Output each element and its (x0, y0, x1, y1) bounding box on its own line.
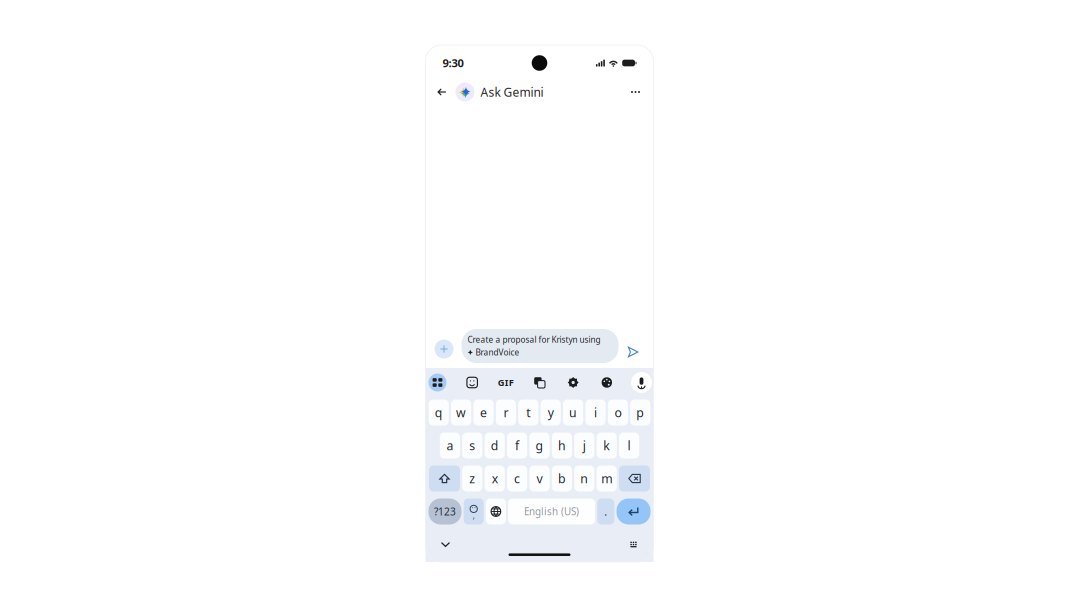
staticText: b (558, 470, 566, 487)
staticText: m (601, 470, 612, 487)
staticText: GIF (498, 376, 514, 389)
button[interactable]: s (462, 432, 482, 458)
staticText: ?123 (434, 505, 456, 518)
button[interactable]: Voice input (629, 370, 653, 394)
button[interactable]: Apps (425, 370, 449, 394)
staticText: v (536, 470, 542, 487)
staticText: p (636, 404, 644, 421)
staticText: o (614, 404, 621, 421)
staticText: 9:30 (442, 55, 463, 71)
button[interactable]: z (462, 465, 482, 491)
button[interactable]: k (597, 432, 617, 458)
button[interactable]: b (552, 465, 572, 491)
button[interactable]: d (485, 432, 505, 458)
button[interactable]: English (US) (508, 498, 595, 524)
button[interactable]: Switch keyboard (624, 535, 642, 553)
button[interactable]: w (451, 399, 471, 425)
staticText: t (526, 404, 530, 421)
button[interactable]: c (507, 465, 527, 491)
staticText: q (435, 404, 443, 421)
button[interactable]: Translate (528, 370, 550, 394)
button[interactable]: a (440, 432, 460, 458)
button[interactable]: y (541, 399, 561, 425)
staticText: y (548, 404, 554, 421)
button[interactable]: GIF (495, 370, 517, 394)
button[interactable]: Hide keyboard (436, 535, 454, 553)
staticText: w (456, 404, 466, 421)
button[interactable]: Emoji (464, 498, 484, 524)
staticText: i (594, 404, 597, 421)
staticText: x (492, 470, 498, 487)
button[interactable]: Change language (486, 498, 506, 524)
button[interactable]: Settings (562, 370, 584, 394)
button[interactable]: p (630, 399, 650, 425)
staticText: . (604, 504, 607, 519)
button[interactable]: Enter (616, 498, 650, 524)
staticText: n (580, 470, 588, 487)
staticText: u (569, 404, 577, 421)
button[interactable]: u (563, 399, 583, 425)
button[interactable]: v (529, 465, 550, 491)
staticText: s (469, 437, 475, 454)
button[interactable]: Shift (429, 465, 460, 491)
button[interactable]: l (619, 432, 639, 458)
button[interactable]: h (552, 432, 572, 458)
staticText: k (603, 437, 610, 454)
button[interactable]: Send (625, 335, 645, 356)
button[interactable]: i (585, 399, 606, 425)
staticText: English (US) (524, 505, 579, 518)
button[interactable]: ?123 (428, 498, 461, 524)
staticText: Create a proposal for Kristyn using (467, 334, 600, 345)
staticText: j (583, 437, 586, 454)
button[interactable]: o (608, 399, 628, 425)
button[interactable]: t (518, 399, 538, 425)
button[interactable]: Backspace (619, 465, 650, 491)
staticText: l (628, 437, 631, 454)
staticText: h (558, 437, 566, 454)
button[interactable]: q (429, 399, 449, 425)
button[interactable]: n (574, 465, 594, 491)
staticText: Ask Gemini (480, 84, 543, 100)
staticText: f (515, 437, 519, 454)
staticText: g (535, 437, 543, 454)
button[interactable]: x (485, 465, 505, 491)
button[interactable]: Theme (596, 370, 618, 394)
staticText: c (514, 470, 520, 487)
staticText: d (491, 437, 499, 454)
button[interactable]: j (574, 432, 594, 458)
staticText: e (480, 404, 487, 421)
staticText: BrandVoice (476, 347, 520, 358)
button[interactable]: Add attachment (433, 335, 454, 356)
button[interactable]: Back (433, 79, 450, 105)
button[interactable]: m (597, 465, 617, 491)
button[interactable]: Stickers (461, 370, 483, 394)
button[interactable]: More options (625, 79, 645, 105)
staticText: , (473, 510, 475, 521)
staticText: a (446, 437, 453, 454)
staticText: r (503, 404, 508, 421)
button[interactable]: e (473, 399, 494, 425)
button[interactable]: f (507, 432, 527, 458)
button[interactable]: g (529, 432, 550, 458)
button[interactable]: . (597, 498, 614, 524)
staticText: z (469, 470, 475, 487)
button[interactable]: r (496, 399, 516, 425)
